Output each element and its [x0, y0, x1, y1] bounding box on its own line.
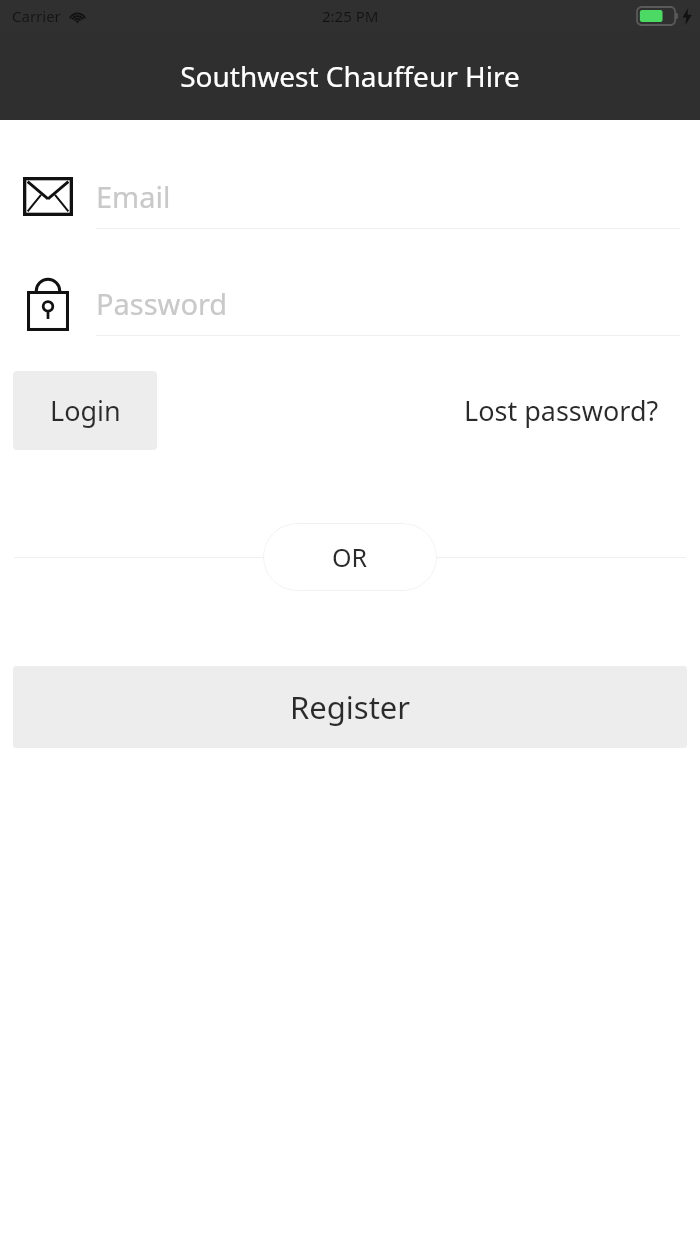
staticText: Password: [96, 284, 228, 323]
other: Email: [23, 177, 73, 216]
button[interactable]: Email: [0, 155, 700, 237]
staticText: Carrier: [12, 6, 61, 26]
button[interactable]: Register: [13, 666, 687, 748]
staticText: Register: [290, 686, 411, 728]
staticText: Login: [50, 392, 121, 429]
staticText: Lost password?: [464, 392, 659, 429]
button[interactable]: Lost password?: [464, 392, 659, 429]
button[interactable]: Password: [0, 262, 700, 344]
staticText: Email: [96, 177, 171, 216]
staticText: OR: [332, 540, 368, 574]
staticText: Southwest Chauffeur Hire: [180, 57, 520, 95]
button[interactable]: Login: [13, 371, 157, 450]
other: Password: [27, 276, 69, 331]
staticText: 2:25 PM: [322, 6, 379, 26]
